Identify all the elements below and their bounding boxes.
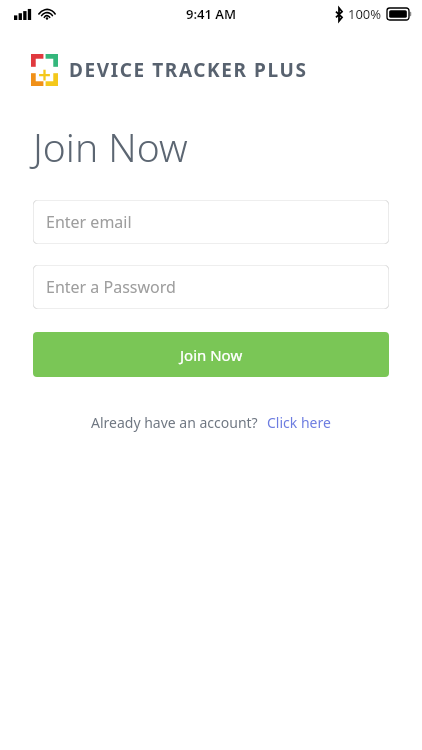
- staticText: Join Now: [33, 120, 188, 173]
- button[interactable]: Enter email: [33, 200, 389, 244]
- staticText: Enter email: [46, 211, 132, 233]
- staticText: 9:41 AM: [186, 5, 237, 23]
- staticText: 100%: [348, 5, 382, 23]
- staticText: Already have an account?: [91, 413, 258, 432]
- button[interactable]: Enter a Password: [33, 265, 389, 309]
- staticText: Click here: [267, 413, 331, 432]
- button[interactable]: Join Now: [33, 332, 389, 377]
- staticText: DEVICE TRACKER PLUS: [69, 57, 308, 83]
- other: Device Tracker Plus logo: [31, 54, 58, 86]
- staticText: Enter a Password: [46, 276, 176, 298]
- button[interactable]: Click here: [267, 413, 331, 432]
- staticText: Join Now: [180, 345, 243, 365]
